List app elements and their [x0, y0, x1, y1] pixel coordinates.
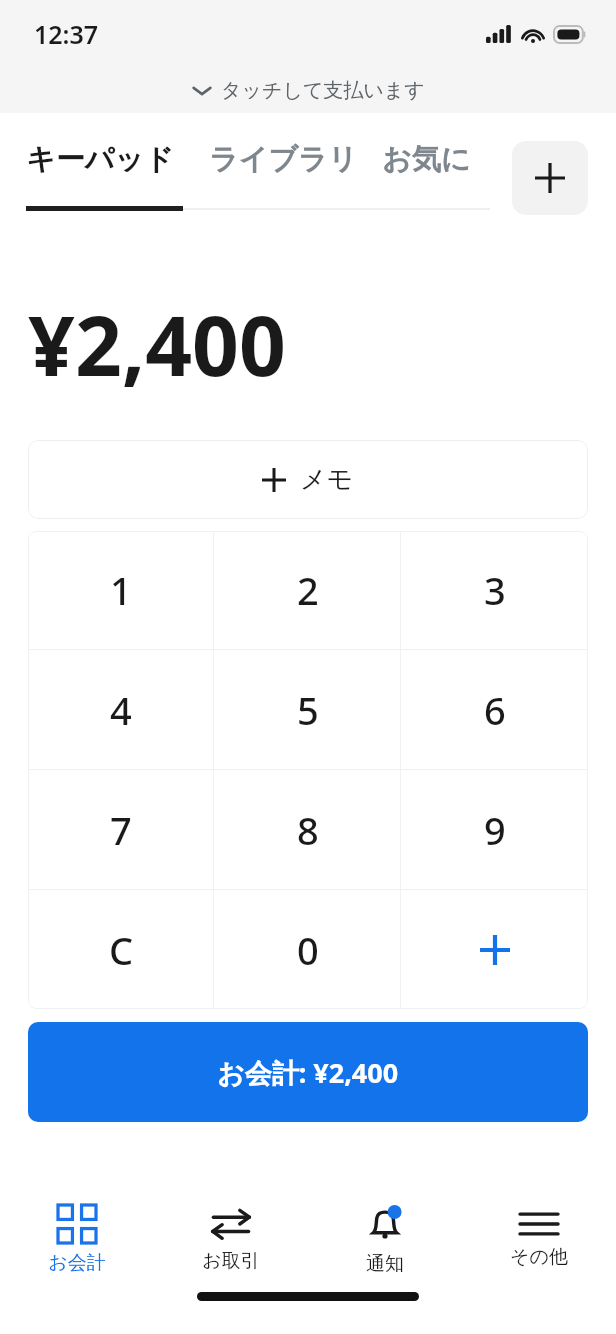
button[interactable]: お会計 [0, 1188, 154, 1292]
staticText: 7 [110, 804, 132, 856]
button[interactable]: 8 [214, 770, 401, 889]
button[interactable]: 0 [214, 890, 401, 1009]
button[interactable]: その他 [462, 1188, 616, 1292]
button[interactable]: ライブラリ [209, 141, 358, 178]
staticText: 3 [484, 564, 506, 616]
button[interactable]: Add [512, 141, 588, 215]
button[interactable]: キーパッド [26, 141, 183, 211]
staticText: キーパッド [26, 141, 174, 178]
button[interactable]: お会計: ¥2,400 [28, 1022, 588, 1122]
button[interactable]: お気に [382, 141, 471, 178]
button[interactable]: 5 [214, 650, 401, 769]
button[interactable]: 通知 [308, 1188, 462, 1292]
button[interactable]: メモ [28, 440, 588, 519]
button[interactable]: 6 [401, 650, 588, 769]
staticText: C [109, 924, 134, 976]
button[interactable] [401, 890, 588, 1009]
staticText: 1 [110, 564, 132, 616]
button[interactable]: 4 [28, 650, 214, 769]
staticText: 4 [110, 684, 132, 736]
staticText: タッチして支払います [221, 78, 425, 103]
button[interactable]: 1 [28, 531, 214, 649]
staticText: 0 [297, 924, 319, 976]
button[interactable]: C [28, 890, 214, 1009]
staticText: 8 [297, 804, 319, 856]
staticText: メモ [300, 463, 354, 496]
staticText: その他 [510, 1245, 568, 1269]
staticText: 12:37 [34, 17, 99, 51]
button[interactable]: 7 [28, 770, 214, 889]
staticText: 6 [484, 684, 506, 736]
staticText: お会計 [48, 1251, 106, 1275]
button[interactable]: 2 [214, 531, 401, 649]
staticText: 2 [297, 564, 319, 616]
staticText: 9 [484, 804, 506, 856]
button[interactable]: 9 [401, 770, 588, 889]
staticText: 5 [297, 684, 319, 736]
staticText: お会計: ¥2,400 [217, 1054, 399, 1091]
button[interactable]: お取引 [154, 1188, 308, 1292]
button[interactable]: 3 [401, 531, 588, 649]
staticText: 通知 [366, 1252, 404, 1276]
staticText: お取引 [202, 1249, 260, 1273]
staticText: ¥2,400 [28, 288, 616, 400]
